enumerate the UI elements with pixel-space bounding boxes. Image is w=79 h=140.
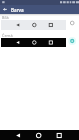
staticText: Bílá xyxy=(2,15,9,20)
button[interactable] xyxy=(0,32,79,47)
staticText: Barva xyxy=(11,7,24,13)
button[interactable] xyxy=(0,14,79,29)
staticText: Černá xyxy=(2,33,13,38)
button[interactable]: Back xyxy=(1,5,9,14)
